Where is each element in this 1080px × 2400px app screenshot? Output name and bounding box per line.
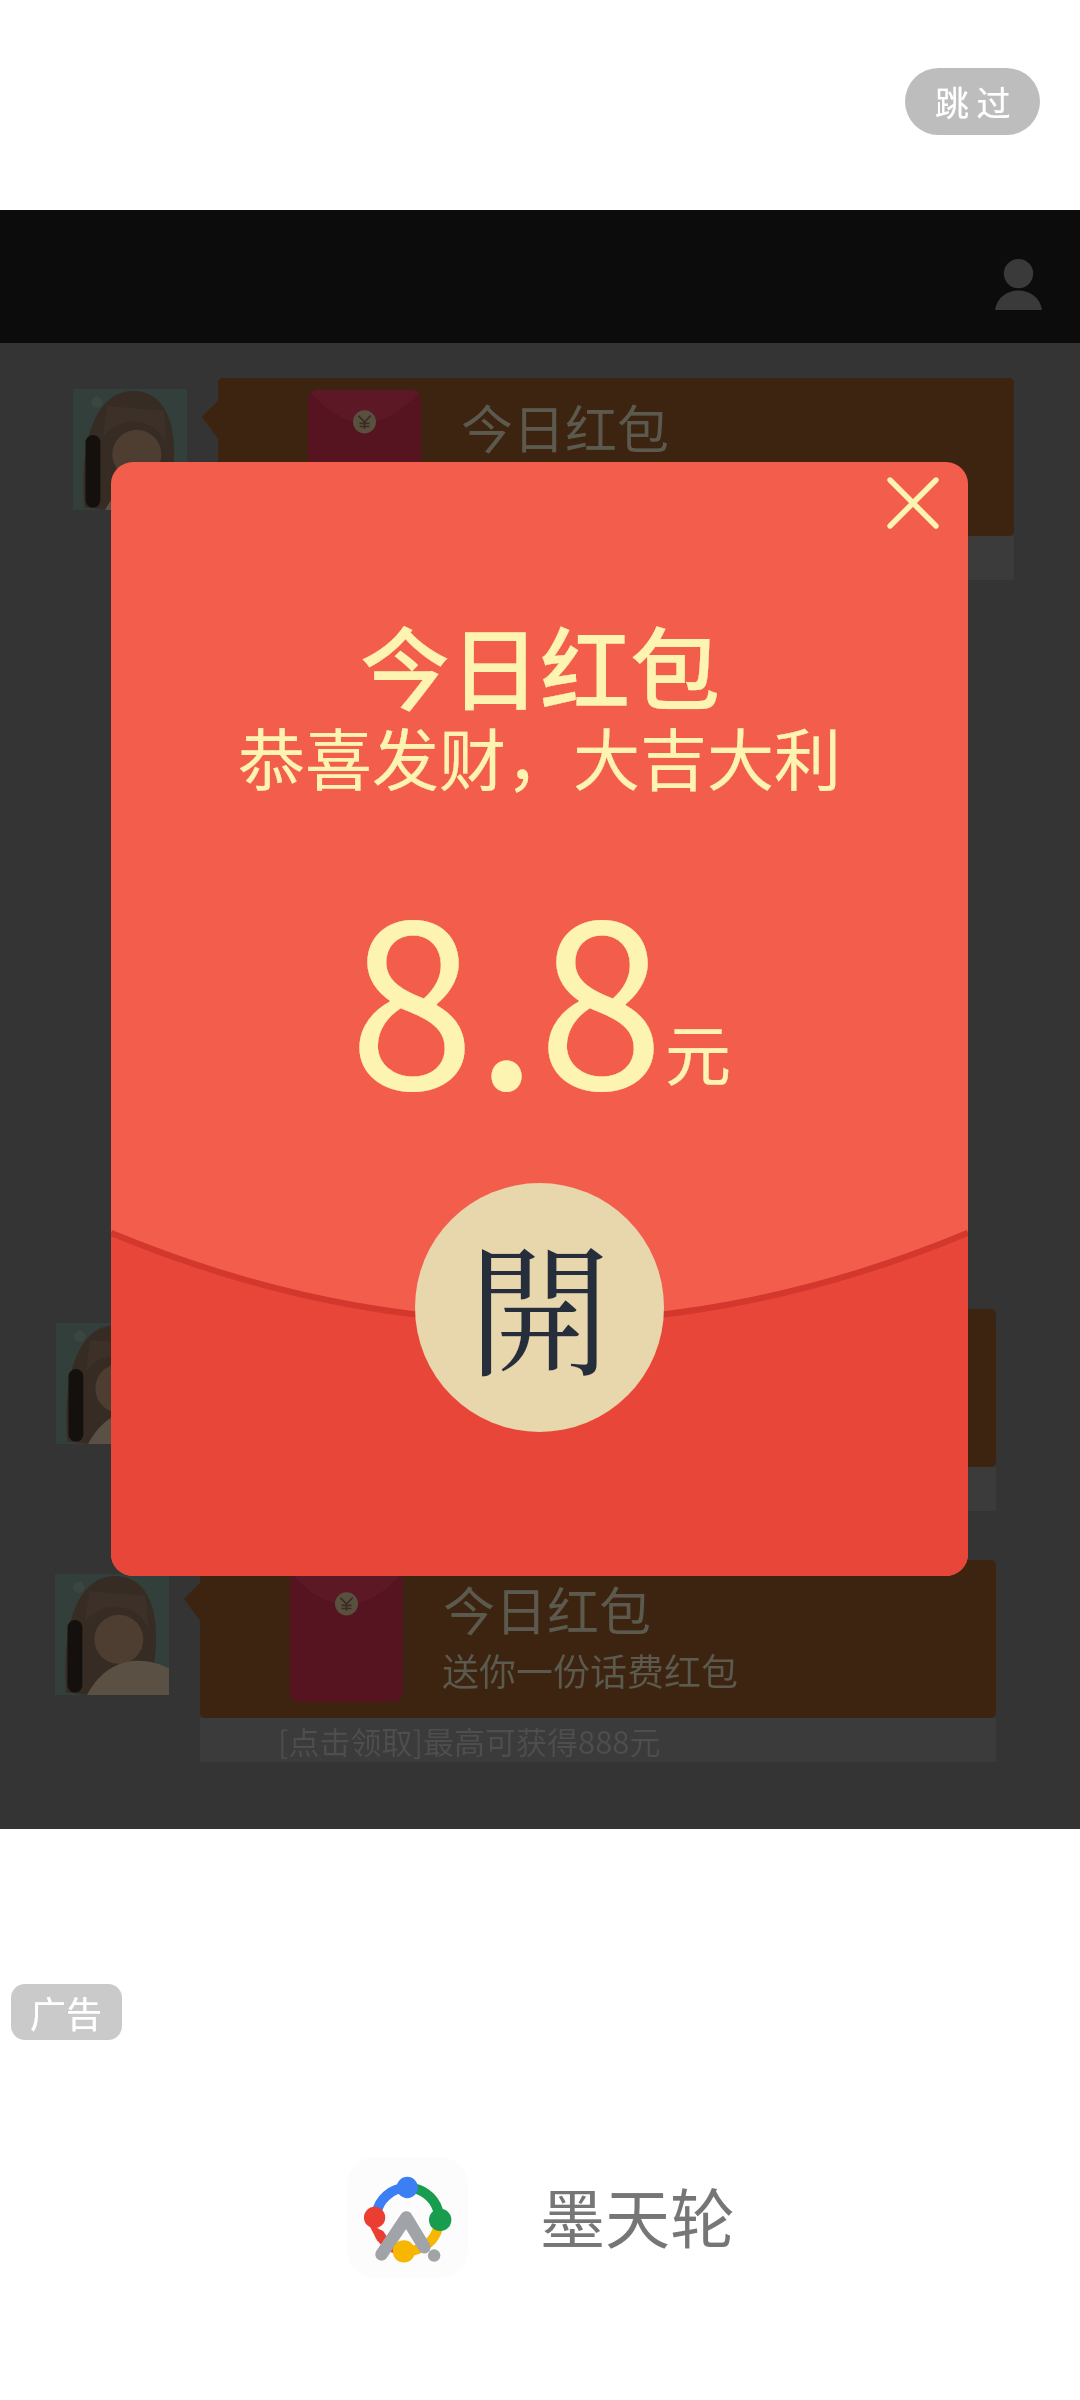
staticText: 元 [665,1003,731,1099]
button[interactable]: 開 [415,1183,664,1432]
button[interactable]: [点击领取]最高可获得888元 [200,1467,996,1511]
other: Profile [994,258,1043,310]
staticText: 今日红包 [461,389,670,464]
staticText: [点击领取]最高可获得888元 [278,1718,661,1762]
staticText: 今日红包 [443,1571,652,1646]
staticText: 恭喜发财，大吉大利 [238,707,841,804]
staticText: 墨天轮 [540,2168,736,2262]
staticText: 今日红包 [360,599,720,729]
staticText: 送你一份话费红包 [442,1392,738,1446]
staticText: 跳 过 [935,77,1011,126]
button[interactable]: [点击领取]最高可获得888元 [218,536,1014,580]
staticText: 广告 [30,1986,103,2038]
button[interactable]: 今日红包 [200,1560,996,1718]
button[interactable]: 跳 过 [905,68,1040,135]
button[interactable]: 今日红包 [218,378,1014,536]
button[interactable]: 墨天轮 [347,2157,664,2278]
button[interactable]: 今日红包 [200,1309,996,1467]
button[interactable]: 关闭 [873,463,953,543]
button[interactable]: [点击领取]最高可获得888元 [200,1718,996,1762]
staticText: 送你一份话费红包 [460,461,756,515]
staticText: 送你一份话费红包 [442,1643,738,1697]
staticText: 8.8 [349,826,665,1155]
staticText: 今日红包 [443,1320,652,1395]
staticText: 開 [468,1200,611,1405]
